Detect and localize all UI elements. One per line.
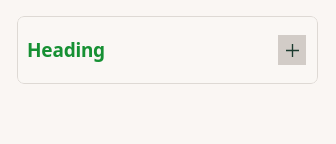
button[interactable]: Add xyxy=(278,35,306,65)
staticText: Heading xyxy=(27,37,105,63)
button[interactable]: Heading xyxy=(17,16,318,84)
